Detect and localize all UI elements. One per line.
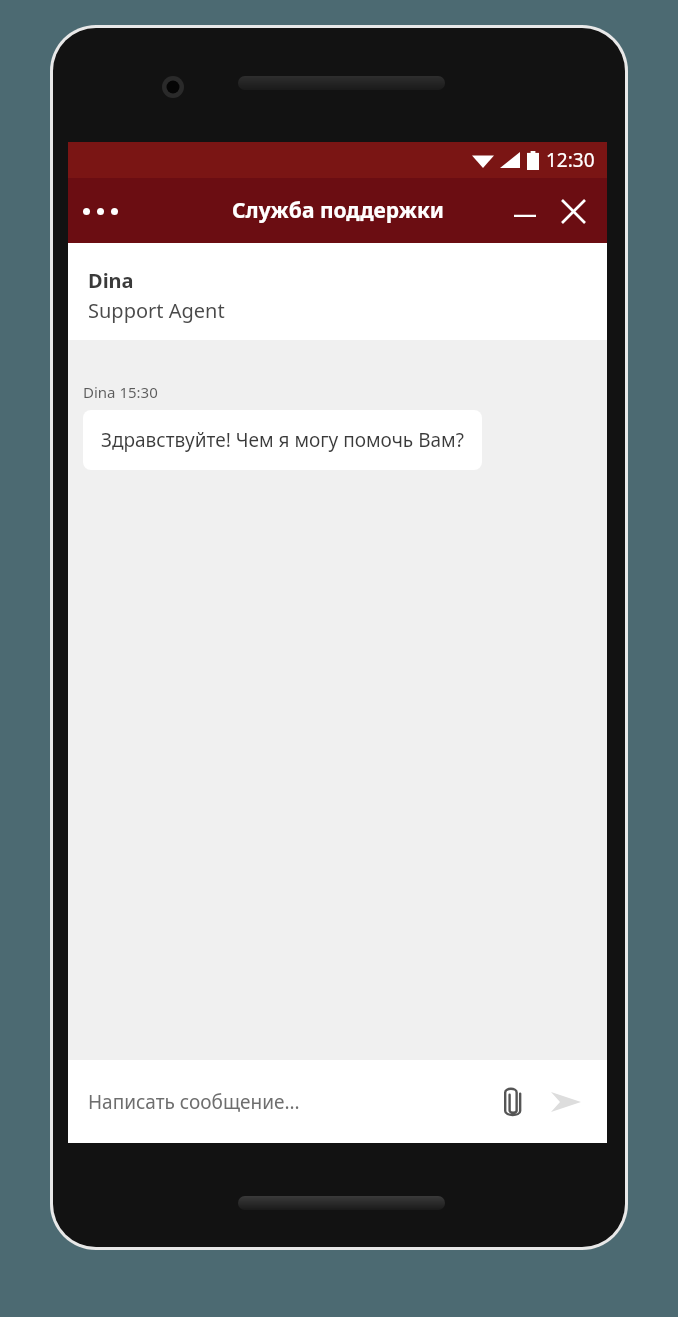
button[interactable]: More options [76,187,124,235]
staticText: Служба поддержки [232,196,444,225]
staticText: 12:30 [546,147,595,173]
button[interactable]: Send [543,1079,589,1125]
staticText: Support Agent [88,297,225,324]
staticText: Здравствуйте! Чем я могу помочь Вам? [101,427,464,453]
button[interactable]: Dina [68,243,607,340]
button[interactable]: Здравствуйте! Чем я могу помочь Вам? [83,410,482,470]
staticText: Dina [88,267,134,294]
button[interactable]: Minimize [503,189,547,233]
staticText: Dina 15:30 [83,382,158,402]
button[interactable]: Close [551,189,595,233]
staticText: Написать сообщение... [88,1089,300,1115]
button[interactable]: Attach file [491,1079,537,1125]
